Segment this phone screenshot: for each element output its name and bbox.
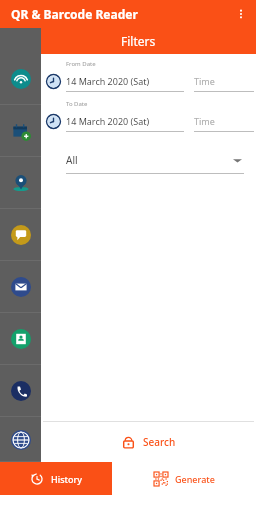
button[interactable]: Time [194, 70, 254, 92]
button[interactable]: Generate [112, 462, 256, 495]
button[interactable]: Time [194, 110, 254, 132]
staticText: Time [194, 115, 215, 127]
button[interactable]: Website [0, 417, 41, 462]
button[interactable]: SMS [0, 209, 41, 261]
staticText: Filters [121, 33, 156, 49]
button[interactable]: Pick date [44, 112, 62, 130]
staticText: Search [143, 435, 176, 449]
button[interactable]: Search [41, 422, 256, 462]
staticText: From Date [66, 60, 96, 68]
button[interactable]: History [0, 462, 112, 495]
button[interactable]: Wi-Fi [0, 53, 41, 105]
staticText: 14 March 2020 (Sat) [66, 115, 150, 127]
button[interactable]: Email [0, 261, 41, 313]
staticText: Generate [175, 473, 215, 485]
button[interactable]: Location [0, 157, 41, 209]
staticText: All [66, 153, 78, 167]
button[interactable]: Pick date [44, 72, 62, 90]
staticText: Time [194, 75, 215, 87]
button[interactable]: 14 March 2020 (Sat) [66, 110, 184, 132]
button[interactable]: Contact [0, 313, 41, 365]
button[interactable]: Phone [0, 365, 41, 417]
button[interactable]: More options [230, 3, 252, 25]
staticText: QR & Barcode Reader [11, 6, 138, 22]
button[interactable]: 14 March 2020 (Sat) [66, 70, 184, 92]
button[interactable]: Calendar event [0, 105, 41, 157]
staticText: 14 March 2020 (Sat) [66, 75, 150, 87]
staticText: To Date [66, 100, 88, 108]
button[interactable]: All [66, 146, 244, 174]
staticText: History [51, 473, 83, 485]
